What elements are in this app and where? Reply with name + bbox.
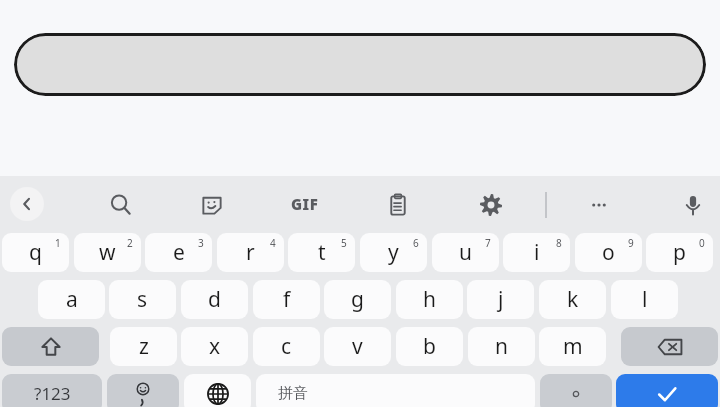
button[interactable]: 拼音 bbox=[256, 374, 535, 407]
button[interactable]: m bbox=[539, 327, 606, 366]
button[interactable]: k bbox=[539, 280, 606, 319]
staticText: i bbox=[534, 238, 540, 267]
staticText: e bbox=[173, 238, 185, 267]
button[interactable]: Emoji bbox=[107, 374, 179, 407]
staticText: s bbox=[137, 285, 148, 314]
staticText: t bbox=[318, 238, 326, 267]
staticText: 8 bbox=[556, 236, 562, 250]
staticText: p bbox=[673, 238, 686, 267]
button[interactable]: e bbox=[145, 233, 212, 272]
button[interactable]: h bbox=[396, 280, 463, 319]
button[interactable]: More options bbox=[577, 183, 621, 227]
staticText: 9 bbox=[628, 236, 634, 250]
staticText: r bbox=[246, 238, 255, 267]
staticText: n bbox=[495, 332, 508, 361]
staticText: o bbox=[602, 238, 615, 267]
staticText: q bbox=[29, 238, 42, 267]
staticText: GIF bbox=[291, 194, 319, 214]
staticText: 5 bbox=[341, 236, 347, 250]
button[interactable]: f bbox=[253, 280, 320, 319]
staticText: 4 bbox=[270, 236, 276, 250]
button[interactable]: g bbox=[324, 280, 391, 319]
staticText: m bbox=[563, 332, 583, 361]
staticText: a bbox=[66, 285, 78, 314]
button[interactable]: GIF bbox=[281, 187, 329, 221]
staticText: f bbox=[283, 285, 291, 314]
staticText: k bbox=[567, 285, 579, 314]
button[interactable]: z bbox=[110, 327, 177, 366]
staticText: 3 bbox=[198, 236, 204, 250]
button[interactable]: d bbox=[181, 280, 248, 319]
staticText: z bbox=[139, 332, 149, 361]
button[interactable]: v bbox=[324, 327, 391, 366]
button[interactable]: Shift bbox=[2, 327, 99, 366]
staticText: g bbox=[351, 285, 364, 314]
button[interactable]: c bbox=[253, 327, 320, 366]
staticText: ?123 bbox=[34, 382, 71, 405]
button[interactable]: r bbox=[217, 233, 284, 272]
button[interactable]: l bbox=[611, 280, 678, 319]
staticText: v bbox=[352, 332, 363, 361]
button[interactable]: a bbox=[38, 280, 105, 319]
button[interactable]: q bbox=[2, 233, 69, 272]
button[interactable]: i bbox=[503, 233, 570, 272]
button[interactable]: j bbox=[467, 280, 534, 319]
button[interactable]: Backspace bbox=[621, 327, 718, 366]
staticText: 拼音 bbox=[278, 384, 308, 403]
staticText: y bbox=[388, 238, 399, 267]
staticText: 7 bbox=[485, 236, 491, 250]
staticText: 0 bbox=[699, 236, 705, 250]
staticText: x bbox=[209, 332, 221, 361]
button[interactable]: p bbox=[646, 233, 713, 272]
button[interactable]: Period bbox=[540, 374, 612, 407]
staticText: b bbox=[423, 332, 436, 361]
button[interactable]: ?123 bbox=[2, 374, 102, 407]
staticText: 2 bbox=[127, 236, 133, 250]
button[interactable]: Clipboard bbox=[376, 183, 420, 227]
button[interactable]: Search bbox=[99, 183, 143, 227]
staticText: w bbox=[99, 238, 116, 267]
button[interactable]: Stickers bbox=[190, 183, 234, 227]
button[interactable]: Change language bbox=[184, 374, 251, 407]
staticText: j bbox=[498, 285, 504, 314]
button[interactable]: u bbox=[432, 233, 499, 272]
button[interactable]: Voice input bbox=[671, 183, 715, 227]
button[interactable]: Settings bbox=[469, 183, 513, 227]
button[interactable]: n bbox=[468, 327, 535, 366]
button[interactable]: Enter bbox=[616, 374, 718, 407]
button[interactable]: t bbox=[288, 233, 355, 272]
staticText: d bbox=[208, 285, 221, 314]
button[interactable]: b bbox=[396, 327, 463, 366]
staticText: h bbox=[423, 285, 436, 314]
staticText: l bbox=[642, 285, 648, 314]
staticText: u bbox=[459, 238, 472, 267]
button[interactable]: x bbox=[181, 327, 248, 366]
button[interactable]: o bbox=[575, 233, 642, 272]
button[interactable]: Back bbox=[10, 187, 44, 221]
staticText: c bbox=[281, 332, 292, 361]
button[interactable]: s bbox=[109, 280, 176, 319]
button[interactable]: w bbox=[74, 233, 141, 272]
staticText: 6 bbox=[413, 236, 419, 250]
button[interactable]: y bbox=[360, 233, 427, 272]
staticText: 1 bbox=[55, 236, 61, 250]
button[interactable] bbox=[14, 33, 706, 96]
